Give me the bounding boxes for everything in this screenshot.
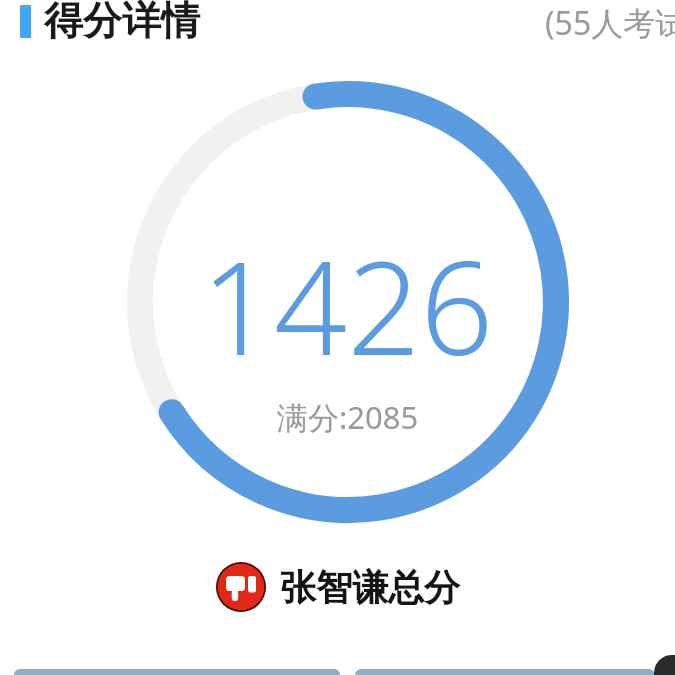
button[interactable]: [0, 0, 675, 675]
button[interactable]: More actions: [654, 655, 675, 675]
staticText: 张智谦总分: [280, 565, 460, 610]
staticText: 得分详情: [44, 0, 200, 45]
staticText: 满分:2085: [277, 396, 419, 438]
staticText: 1426: [201, 218, 494, 392]
button[interactable]: [14, 669, 340, 675]
staticText: (55人考试): [545, 1, 675, 45]
button[interactable]: Thumbs down score marker: [212, 560, 464, 614]
other: Thumbs down score marker: [216, 562, 266, 612]
button[interactable]: [355, 669, 655, 675]
